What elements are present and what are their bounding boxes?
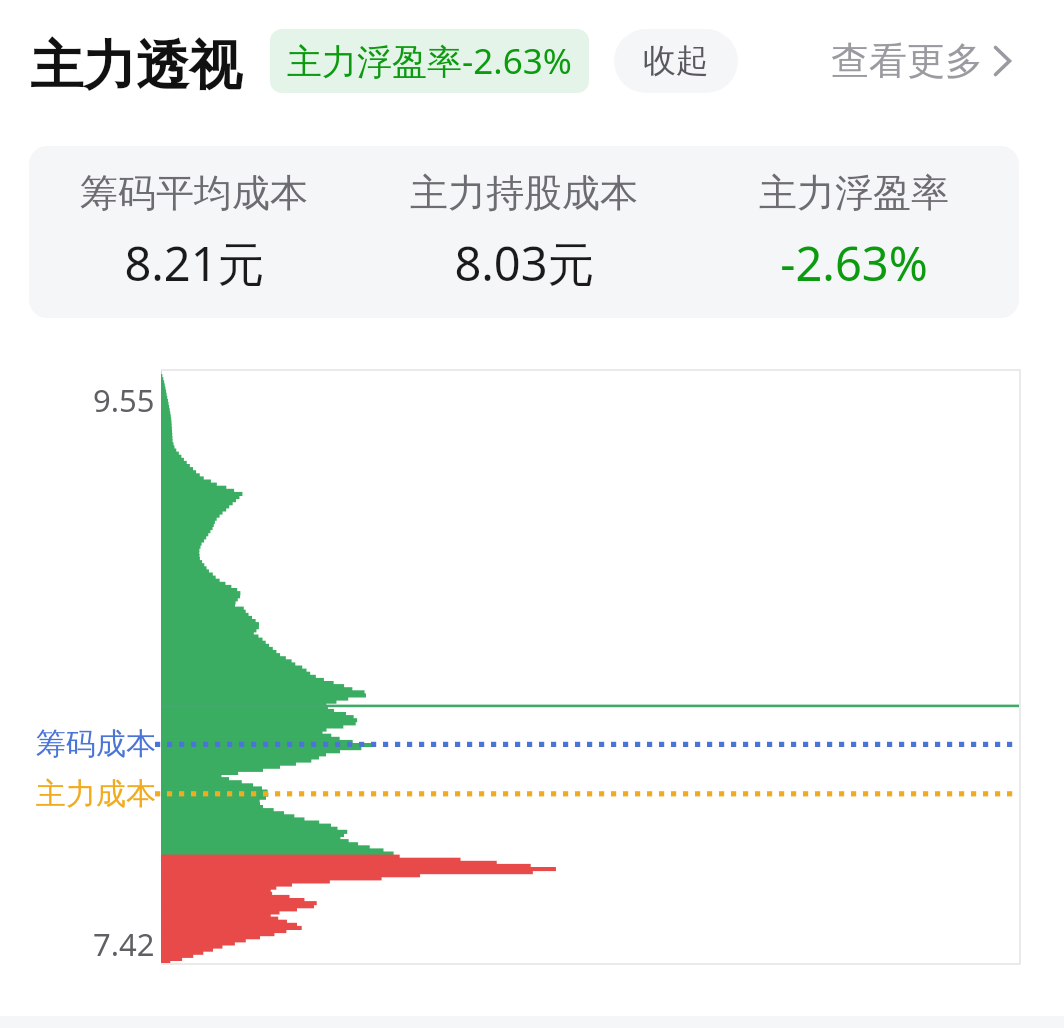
button[interactable]: 主力浮盈率-2.63% xyxy=(270,29,589,93)
staticText: 主力浮盈率-2.63% xyxy=(287,37,572,85)
staticText: 筹码成本 xyxy=(36,725,156,763)
staticText: 筹码平均成本 xyxy=(80,169,308,217)
staticText: 9.55 xyxy=(93,379,155,421)
other: More xyxy=(993,45,1012,77)
button[interactable]: 查看更多 xyxy=(827,29,1016,93)
staticText: 8.21元 xyxy=(124,231,265,295)
staticText: 收起 xyxy=(643,40,709,82)
staticText: -2.63% xyxy=(780,231,928,295)
staticText: 主力成本 xyxy=(36,775,156,813)
staticText: 主力持股成本 xyxy=(410,169,638,217)
staticText: 8.03元 xyxy=(454,231,595,295)
staticText: 7.42 xyxy=(93,923,155,965)
button[interactable]: 收起 xyxy=(614,29,738,93)
staticText: 主力浮盈率 xyxy=(759,169,949,217)
staticText: 主力透视 xyxy=(30,33,242,100)
button[interactable]: Chip distribution chart xyxy=(161,371,1019,963)
staticText: 查看更多 xyxy=(831,37,983,85)
